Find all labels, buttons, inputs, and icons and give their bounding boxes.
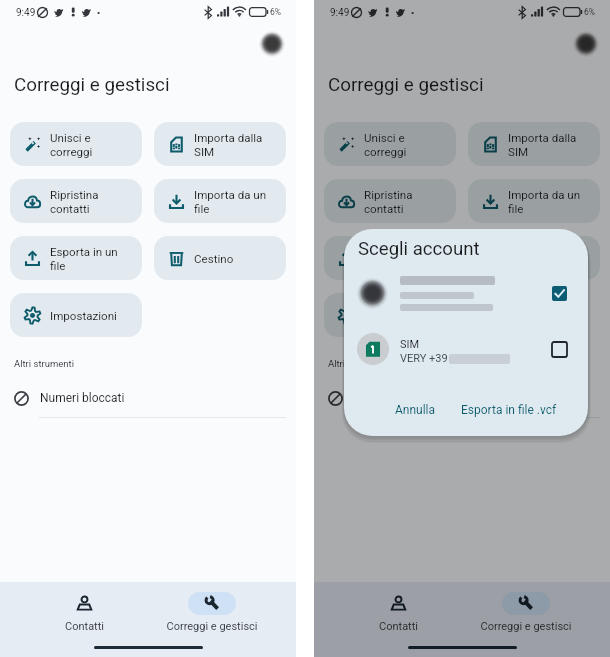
button[interactable]: Correggi e gestisci (462, 592, 590, 633)
staticText: Unisci e (50, 131, 91, 145)
button[interactable]: Unisci e (324, 122, 456, 166)
staticText: Contatti (65, 620, 104, 633)
staticText: Altri strumenti (14, 358, 75, 369)
staticText: Esporta in file .vcf (461, 403, 557, 417)
button[interactable]: SIM (344, 328, 588, 370)
button[interactable]: Importa dalla (154, 122, 286, 166)
staticText: SIM (194, 145, 215, 159)
staticText: Esporta in un (364, 245, 432, 259)
staticText: 9:49 (330, 7, 350, 19)
button[interactable]: Cestino (154, 236, 286, 280)
button[interactable]: Select (548, 338, 570, 360)
staticText: 9:49 (16, 7, 36, 19)
staticText: correggi (50, 145, 93, 159)
staticText: Correggi e gestisci (480, 620, 572, 633)
staticText: file (194, 202, 210, 216)
staticText: SIM (508, 145, 529, 159)
button[interactable]: Correggi e gestisci (148, 592, 276, 633)
button[interactable]: Contatti (334, 592, 462, 633)
button[interactable]: Annulla (385, 399, 446, 421)
staticText: Correggi e gestisci (166, 620, 258, 633)
staticText: VERY +39 (400, 352, 448, 365)
button[interactable]: Impostazioni (10, 293, 142, 337)
staticText: Importa da un (194, 188, 267, 202)
button[interactable]: Select (344, 265, 588, 321)
staticText: file (50, 259, 66, 273)
button[interactable]: Esporta in un (10, 236, 142, 280)
button[interactable]: Impostazioni (324, 293, 456, 337)
button[interactable]: Select (548, 282, 570, 304)
staticText: Scegli account (358, 238, 480, 260)
staticText: correggi (364, 145, 407, 159)
staticText: contatti (364, 202, 404, 216)
staticText: Numeri bloccati (40, 391, 125, 405)
button[interactable]: Contatti (20, 592, 148, 633)
button[interactable]: Importa dalla (468, 122, 600, 166)
staticText: SIM (400, 338, 420, 351)
staticText: Contatti (379, 620, 418, 633)
staticText: contatti (50, 202, 90, 216)
button[interactable]: Account (573, 31, 599, 57)
button[interactable]: Ripristina (324, 179, 456, 223)
button[interactable]: Ripristina (10, 179, 142, 223)
staticText: Unisci e (364, 131, 405, 145)
staticText: Correggi e gestisci (14, 74, 170, 96)
button[interactable]: Unisci e (10, 122, 142, 166)
staticText: Impostazioni (50, 309, 117, 323)
staticText: Impostazioni (364, 309, 431, 323)
staticText: 6% (270, 7, 282, 17)
staticText: file (508, 202, 524, 216)
button[interactable]: Esporta in un (324, 236, 456, 280)
staticText: Altri strumenti (328, 358, 389, 369)
staticText: Correggi e gestisci (328, 74, 484, 96)
button[interactable]: Numeri bloccati (324, 387, 600, 409)
staticText: Importa da un (508, 188, 581, 202)
button[interactable]: Numeri bloccati (10, 387, 286, 409)
staticText: Esporta in un (50, 245, 118, 259)
staticText: 6% (584, 7, 596, 17)
staticText: Numeri bloccati (354, 391, 439, 405)
staticText: Importa dalla (508, 131, 577, 145)
staticText: Annulla (395, 403, 436, 417)
staticText: Cestino (194, 252, 234, 266)
button[interactable]: Account (259, 31, 285, 57)
staticText: Ripristina (364, 188, 413, 202)
button[interactable]: Cestino (468, 236, 600, 280)
staticText: Importa dalla (194, 131, 263, 145)
button[interactable]: Esporta in file .vcf (451, 399, 567, 421)
button[interactable]: Importa da un (468, 179, 600, 223)
button[interactable]: Importa da un (154, 179, 286, 223)
staticText: Ripristina (50, 188, 99, 202)
